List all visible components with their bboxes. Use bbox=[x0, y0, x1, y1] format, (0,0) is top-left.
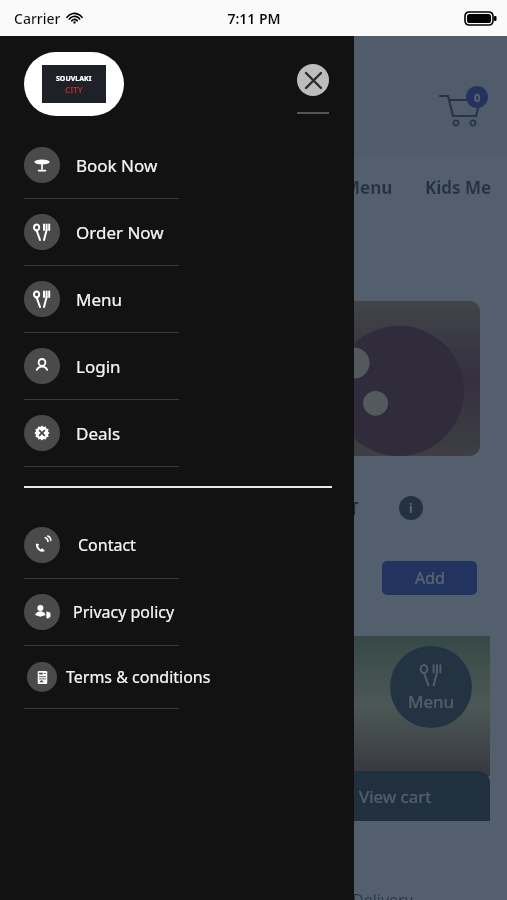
button[interactable]: Logo bbox=[24, 52, 124, 116]
button[interactable]: Privacy policy bbox=[0, 579, 354, 645]
staticText: Kids Me bbox=[425, 176, 492, 199]
button[interactable]: Order Now bbox=[0, 199, 354, 265]
staticText: Menu bbox=[344, 176, 393, 199]
button[interactable]: Add bbox=[382, 561, 477, 595]
staticText: 7:11 PM bbox=[227, 9, 281, 28]
staticText: Delivery bbox=[352, 889, 413, 900]
staticText: Privacy policy bbox=[73, 601, 175, 623]
staticText: CITY bbox=[65, 84, 83, 95]
button[interactable]: Terms & conditions bbox=[0, 646, 354, 708]
staticText: View cart bbox=[359, 785, 432, 808]
button[interactable]: Cart bbox=[436, 86, 492, 142]
button[interactable]: Menu bbox=[390, 646, 472, 728]
button[interactable]: Login bbox=[0, 333, 354, 399]
button[interactable]: View cart bbox=[300, 771, 490, 821]
staticText: Contact bbox=[78, 534, 136, 556]
staticText: Book Now bbox=[76, 154, 158, 177]
button[interactable]: Close bbox=[297, 64, 329, 96]
staticText: Deals bbox=[76, 422, 121, 445]
staticText: Terms & conditions bbox=[66, 666, 211, 688]
button[interactable]: Deals bbox=[0, 400, 354, 466]
staticText: 0 bbox=[474, 90, 481, 105]
staticText: i bbox=[409, 499, 413, 517]
button[interactable]: Info bbox=[399, 496, 423, 520]
staticText: EET bbox=[330, 497, 359, 520]
staticText: Order Now bbox=[76, 221, 164, 244]
staticText: Login bbox=[76, 355, 121, 378]
staticText: SOUVLAKI bbox=[56, 74, 92, 84]
staticText: Menu bbox=[408, 690, 455, 713]
button[interactable]: Menu bbox=[0, 266, 354, 332]
button[interactable]: Contact bbox=[0, 512, 354, 578]
staticText: Menu bbox=[76, 288, 123, 311]
staticText: Carrier bbox=[14, 9, 61, 28]
button[interactable]: Book Now bbox=[0, 132, 354, 198]
staticText: Add bbox=[415, 567, 445, 589]
